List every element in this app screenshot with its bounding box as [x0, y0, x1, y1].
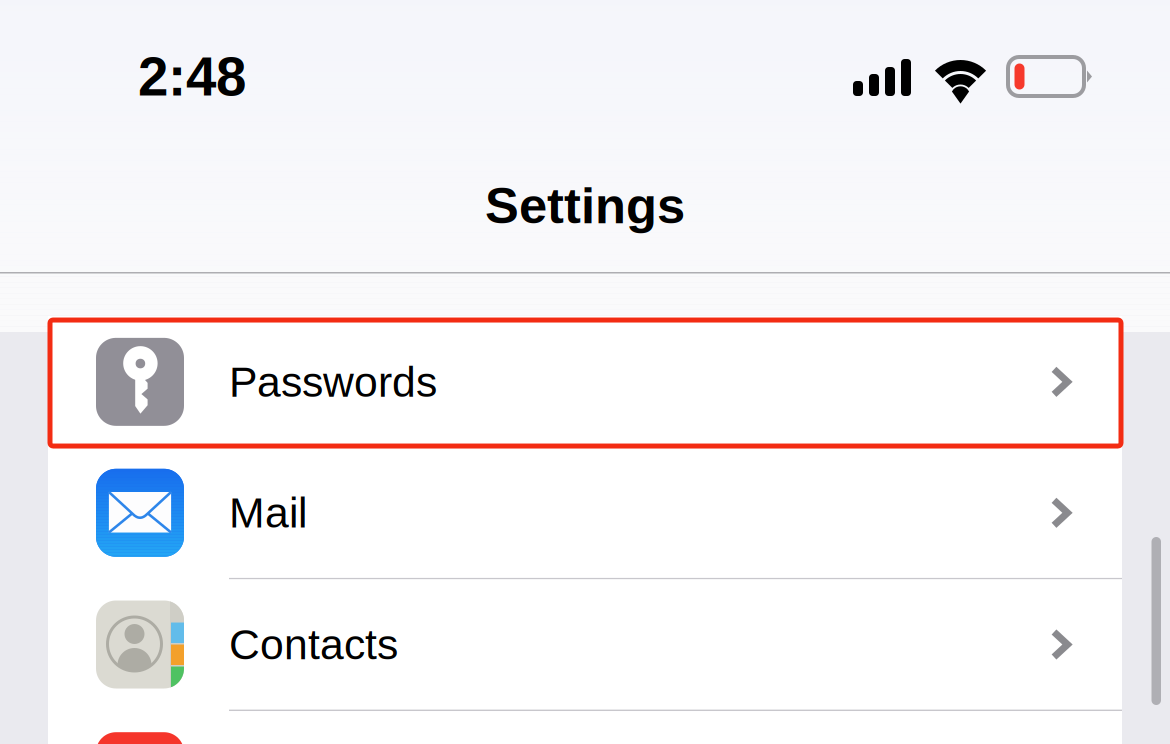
button[interactable]: Contacts — [48, 579, 1122, 711]
button[interactable]: Calendar — [48, 711, 1122, 744]
staticText: Settings — [485, 177, 685, 234]
staticText: Passwords — [229, 358, 437, 406]
staticText: 2:48 — [138, 46, 246, 107]
button[interactable]: Passwords — [48, 316, 1122, 448]
staticText: Contacts — [229, 621, 398, 668]
staticText: Mail — [229, 489, 307, 537]
button[interactable]: Mail — [48, 448, 1122, 579]
